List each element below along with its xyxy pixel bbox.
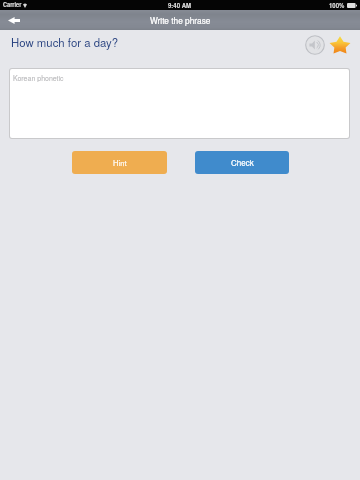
staticText: 100% (329, 1, 345, 10)
button[interactable]: Korean phonetic (10, 69, 349, 138)
staticText: Check (231, 157, 254, 168)
staticText: How much for a day? (11, 34, 119, 50)
staticText: 9:40 AM (168, 1, 192, 10)
staticText: Write the phrase (150, 14, 211, 26)
button[interactable]: Check (195, 151, 289, 174)
button[interactable]: Hint (72, 151, 167, 174)
button[interactable]: Favourite (328, 33, 352, 57)
button[interactable]: Back (4, 10, 24, 30)
staticText: Korean phonetic (13, 73, 64, 83)
staticText: Hint (113, 157, 127, 168)
button[interactable]: Play audio (303, 33, 327, 57)
staticText: Carrier (3, 1, 22, 9)
